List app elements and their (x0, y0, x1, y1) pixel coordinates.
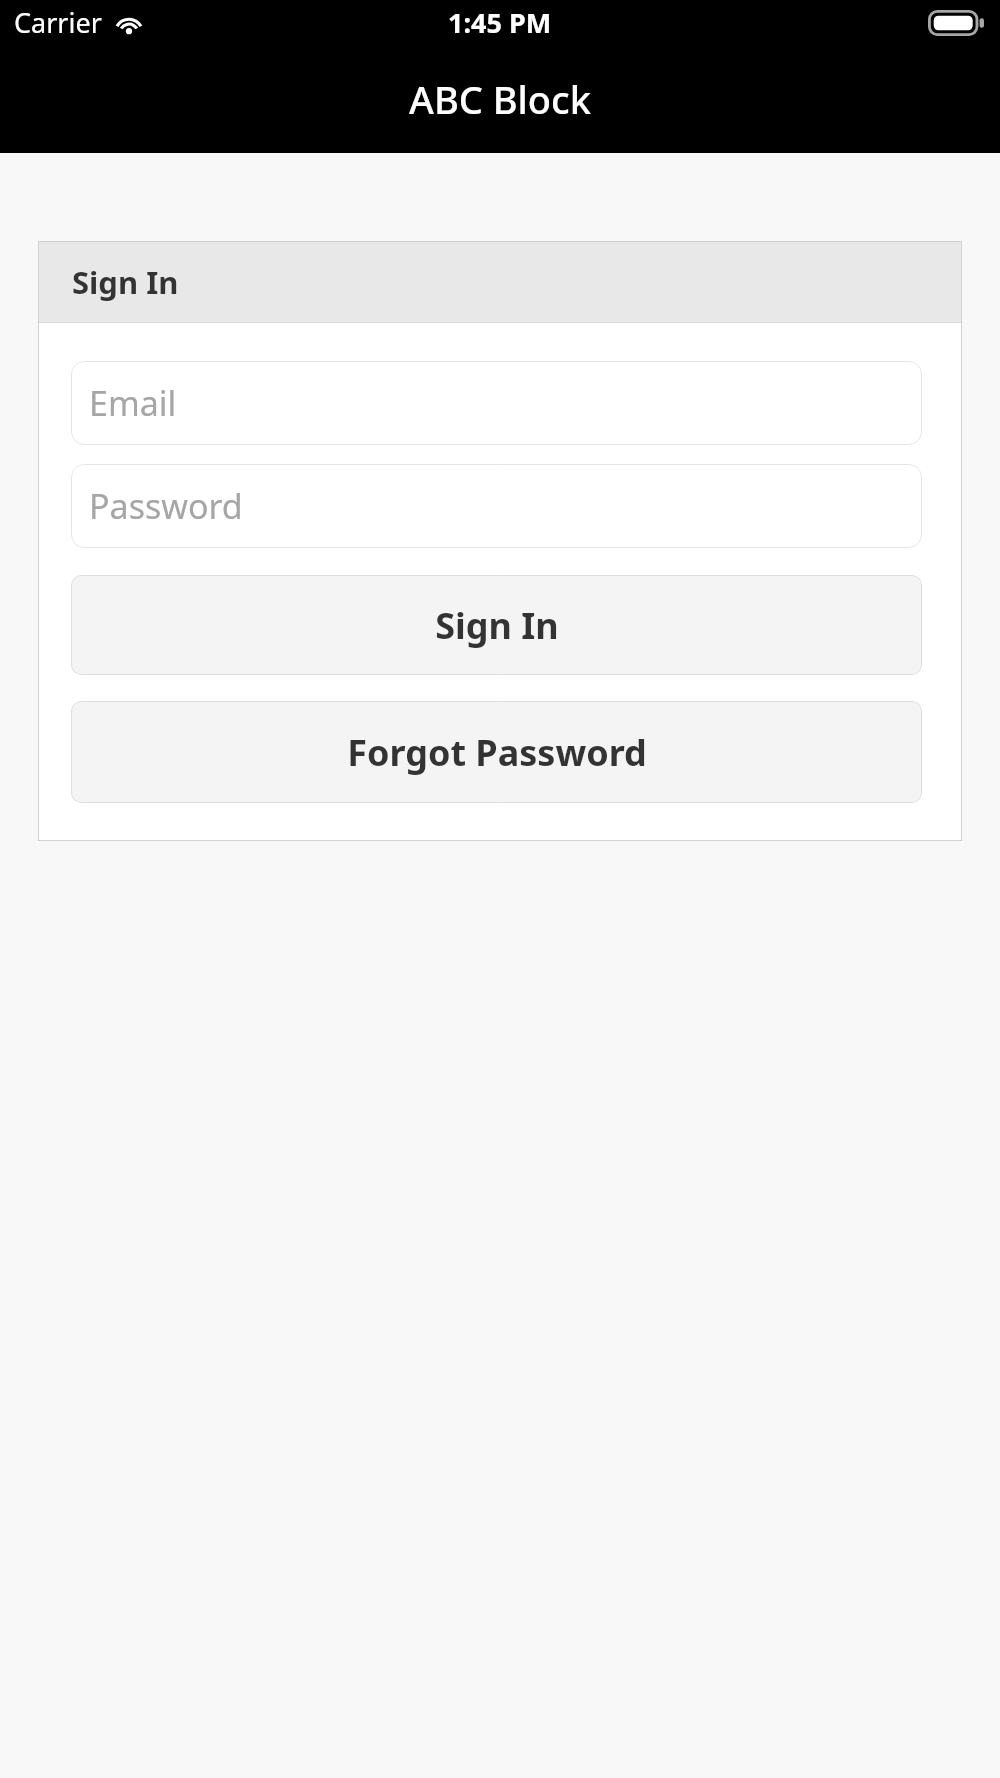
staticText: Email (89, 380, 177, 426)
button[interactable]: Email (71, 361, 922, 445)
staticText: Sign In (72, 261, 179, 303)
staticText: Sign In (435, 601, 559, 650)
staticText: Password (89, 483, 243, 529)
staticText: ABC Block (409, 73, 591, 125)
button[interactable]: Password (71, 464, 922, 548)
staticText: Forgot Password (347, 728, 647, 777)
button[interactable]: Sign In (71, 575, 922, 675)
staticText: 1:45 PM (448, 4, 552, 41)
staticText: Carrier (14, 4, 102, 41)
button[interactable]: Forgot Password (71, 701, 922, 803)
